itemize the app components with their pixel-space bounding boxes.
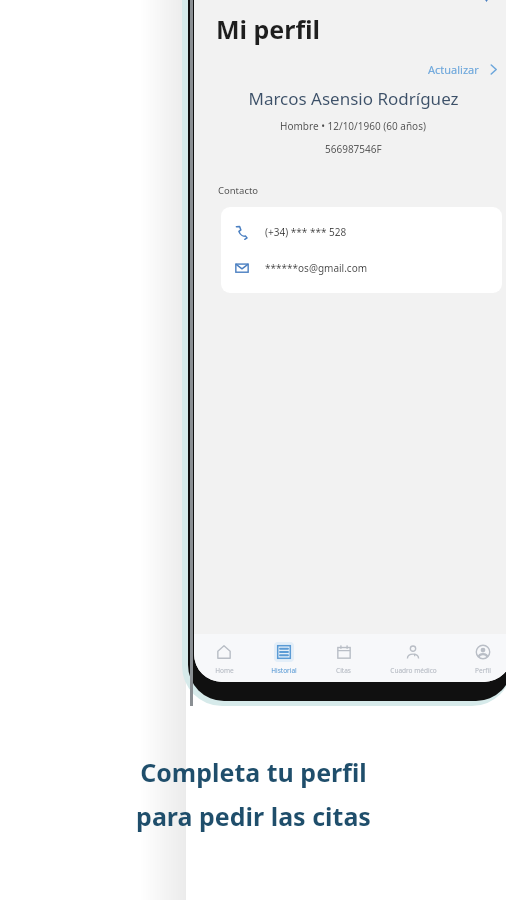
button[interactable]: Actualizar	[420, 58, 506, 81]
staticText: Contacto	[218, 184, 259, 197]
button[interactable]: ******os@gmail.com	[221, 257, 502, 279]
staticText: Perfil	[475, 666, 491, 675]
staticText: Home	[215, 666, 234, 675]
button[interactable]: Citas	[314, 634, 373, 682]
button[interactable]: Historial	[254, 634, 314, 682]
staticText: Cuadro médico	[390, 666, 437, 675]
button[interactable]: Perfil	[453, 634, 506, 682]
staticText: Mi perfil	[216, 12, 321, 46]
button[interactable]: (+34) *** *** 528	[221, 221, 502, 243]
staticText: Actualizar	[428, 62, 479, 77]
staticText: Completa tu perfil	[140, 755, 367, 789]
button[interactable]: Cuadro médico	[373, 634, 453, 682]
staticText: 566987546F	[325, 142, 382, 156]
staticText: Historial	[271, 666, 297, 675]
staticText: Hombre • 12/10/1960 (60 años)	[280, 119, 426, 133]
button[interactable]: Home	[194, 634, 254, 682]
staticText: para pedir las citas	[136, 799, 371, 833]
staticText: Citas	[336, 666, 351, 675]
staticText: ******os@gmail.com	[265, 261, 368, 275]
staticText: Marcos Asensio Rodríguez	[248, 87, 459, 110]
button[interactable]: Ajustes	[470, 0, 502, 8]
staticText: (+34) *** *** 528	[265, 225, 347, 239]
